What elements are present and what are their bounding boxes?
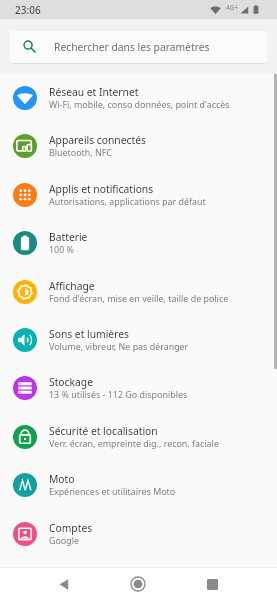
button[interactable]: Home bbox=[118, 568, 158, 600]
staticText: Autorisations, applications par défaut bbox=[49, 195, 206, 207]
button[interactable]: Moto bbox=[0, 461, 277, 509]
staticText: Volume, vibreur, Ne pas déranger bbox=[49, 340, 189, 352]
button[interactable]: Appareils connectés bbox=[0, 122, 277, 170]
staticText: Batterie bbox=[49, 230, 88, 244]
staticText: Réseau et Internet bbox=[49, 85, 139, 99]
staticText: 4G+ bbox=[226, 3, 239, 12]
staticText: 100 % bbox=[49, 243, 74, 255]
staticText: 13 % utilisés - 112 Go disponibles bbox=[49, 388, 188, 400]
button[interactable]: Recents bbox=[192, 568, 232, 600]
staticText: Sécurité et localisation bbox=[49, 424, 158, 438]
button[interactable]: Stockage bbox=[0, 364, 277, 412]
button[interactable]: Comptes bbox=[0, 510, 277, 558]
staticText: Google bbox=[49, 534, 80, 546]
staticText: Stockage bbox=[49, 375, 93, 389]
button[interactable]: Réseau et Internet bbox=[0, 74, 277, 122]
button[interactable]: Sons et lumières bbox=[0, 316, 277, 364]
button[interactable]: Back bbox=[44, 568, 84, 600]
button[interactable]: Applis et notifications bbox=[0, 171, 277, 219]
staticText: Bluetooth, NFC bbox=[49, 146, 112, 158]
button[interactable]: Affichage bbox=[0, 268, 277, 316]
staticText: Sons et lumières bbox=[49, 327, 129, 341]
staticText: Expériences et utilitaires Moto bbox=[49, 485, 176, 497]
button[interactable]: Batterie bbox=[0, 219, 277, 267]
staticText: Fond d'écran, mise en veille, taille de … bbox=[49, 292, 229, 304]
staticText: Affichage bbox=[49, 279, 95, 293]
staticText: 23:06 bbox=[15, 3, 41, 17]
staticText: Applis et notifications bbox=[49, 182, 154, 196]
staticText: Moto bbox=[49, 472, 75, 486]
staticText: Verr. écran, empreinte dig., recon. faci… bbox=[49, 437, 219, 449]
button[interactable]: Rechercher dans les paramètres bbox=[10, 31, 267, 63]
staticText: Rechercher dans les paramètres bbox=[54, 40, 210, 54]
staticText: Wi-Fi, mobile, conso données, point d'ac… bbox=[49, 98, 230, 110]
staticText: Appareils connectés bbox=[49, 133, 146, 147]
button[interactable]: Sécurité et localisation bbox=[0, 413, 277, 461]
staticText: Comptes bbox=[49, 521, 93, 535]
